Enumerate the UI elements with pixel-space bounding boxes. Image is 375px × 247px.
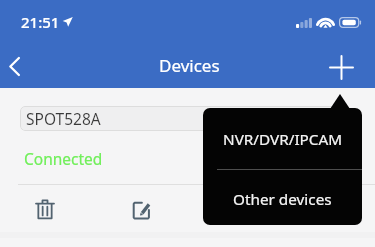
staticText: SPOT528A	[26, 108, 101, 129]
staticText: 21:51	[21, 12, 60, 32]
button[interactable]: Add device	[331, 44, 375, 88]
button[interactable]: Back	[0, 44, 28, 88]
staticText: Connected	[24, 148, 103, 169]
button[interactable]: NVR/DVR/IPCAM	[203, 108, 362, 169]
staticText: Devices	[159, 54, 220, 77]
button[interactable]: SPOT528A	[20, 106, 345, 131]
staticText: NVR/DVR/IPCAM	[223, 129, 343, 150]
staticText: Other devices	[233, 189, 332, 210]
button[interactable]: Delete	[17, 185, 72, 230]
button[interactable]: Other devices	[203, 170, 362, 225]
button[interactable]: Edit	[114, 185, 169, 230]
